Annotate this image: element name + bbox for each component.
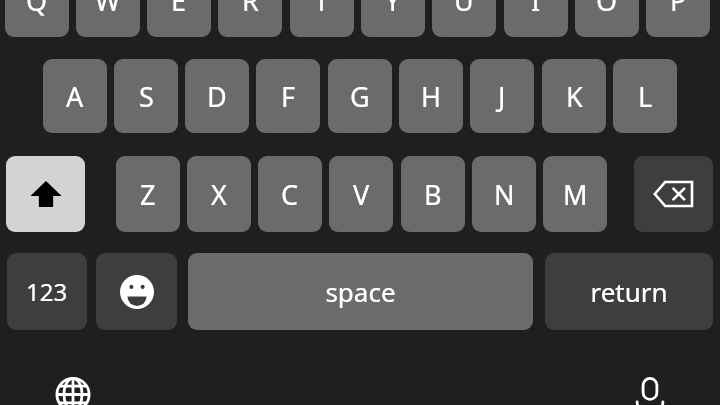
staticText: D	[207, 78, 227, 115]
button[interactable]: T	[290, 0, 354, 37]
staticText: O	[596, 0, 618, 19]
staticText: Z	[140, 176, 156, 213]
button[interactable]: D	[185, 59, 249, 133]
button[interactable]: A	[43, 59, 107, 133]
staticText: F	[281, 78, 296, 115]
staticText: space	[325, 274, 396, 309]
button[interactable]: Z	[116, 156, 180, 232]
staticText: U	[454, 0, 474, 19]
button[interactable]: M	[543, 156, 607, 232]
button[interactable]: C	[258, 156, 322, 232]
button[interactable]: F	[256, 59, 320, 133]
staticText: J	[498, 78, 506, 115]
button[interactable]: space	[188, 253, 533, 330]
staticText: I	[531, 0, 541, 19]
button[interactable]: X	[187, 156, 251, 232]
button[interactable]: return	[545, 253, 713, 330]
staticText: T	[314, 0, 330, 19]
button[interactable]: P	[646, 0, 710, 37]
staticText: A	[66, 78, 84, 115]
button[interactable]: N	[472, 156, 536, 232]
button[interactable]: Voice input	[612, 370, 688, 405]
button[interactable]: L	[613, 59, 677, 133]
button[interactable]: Change language	[35, 370, 111, 405]
staticText: return	[590, 274, 668, 309]
button[interactable]: O	[575, 0, 639, 37]
staticText: 123	[26, 275, 68, 308]
staticText: P	[670, 0, 687, 19]
button[interactable]: V	[329, 156, 393, 232]
button[interactable]: E	[147, 0, 211, 37]
button[interactable]: Emoji	[96, 253, 177, 330]
staticText: S	[139, 78, 154, 115]
button[interactable]: Backspace	[634, 156, 713, 232]
staticText: K	[566, 78, 583, 115]
staticText: N	[494, 176, 515, 213]
button[interactable]: K	[542, 59, 606, 133]
staticText: R	[242, 0, 259, 19]
staticText: M	[563, 176, 588, 213]
button[interactable]: R	[218, 0, 282, 37]
staticText: C	[281, 176, 299, 213]
button[interactable]: Y	[361, 0, 425, 37]
button[interactable]: 123	[7, 253, 87, 330]
button[interactable]: H	[399, 59, 463, 133]
staticText: W	[95, 0, 121, 19]
staticText: L	[638, 78, 653, 115]
staticText: B	[424, 176, 442, 213]
staticText: E	[171, 0, 187, 19]
staticText: V	[353, 176, 370, 213]
button[interactable]: J	[470, 59, 534, 133]
button[interactable]: S	[114, 59, 178, 133]
staticText: G	[350, 78, 370, 115]
staticText: Y	[385, 0, 401, 19]
staticText: Q	[26, 0, 48, 19]
button[interactable]: G	[328, 59, 392, 133]
button[interactable]: B	[401, 156, 465, 232]
staticText: X	[211, 176, 227, 213]
button[interactable]: W	[76, 0, 140, 37]
button[interactable]: Q	[5, 0, 69, 37]
button[interactable]: Shift	[6, 156, 85, 232]
staticText: H	[421, 78, 442, 115]
button[interactable]: U	[432, 0, 496, 37]
button[interactable]: I	[504, 0, 568, 37]
